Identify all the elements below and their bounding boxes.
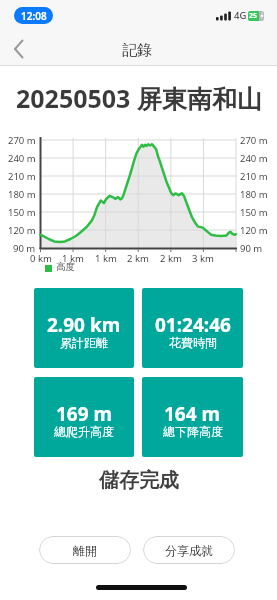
staticText: 120 m [240,224,268,237]
staticText: 90 m [240,242,263,255]
staticText: 240 m [8,152,36,165]
staticText: 270 m [8,134,36,147]
staticText: 總下降高度 [163,424,223,439]
staticText: 120 m [8,224,36,237]
button[interactable]: 01:24:46 [142,288,243,368]
staticText: 分享成就 [165,543,213,558]
staticText: 90 m [13,242,36,255]
staticText: 0 km [30,252,52,265]
staticText: 離開 [73,543,97,558]
staticText: 12:08 [21,9,47,23]
staticText: 210 m [8,170,36,183]
staticText: 累計距離 [60,335,108,350]
button[interactable]: 164 m [142,377,243,457]
staticText: 180 m [8,188,36,201]
staticText: 2 km [127,252,149,265]
staticText: 儲存完成 [99,468,179,493]
staticText: 169 m [56,401,113,427]
staticText: 3 km [192,252,214,265]
staticText: 記錄 [122,41,152,60]
button[interactable]: 169 m [34,377,134,457]
staticText: 150 m [240,206,268,219]
staticText: 高度 [56,261,75,273]
staticText: 164 m [164,401,221,427]
staticText: 花費時間 [169,335,217,350]
staticText: 25 [249,11,258,21]
staticText: 4G [234,9,247,22]
button[interactable]: 2.90 km [34,288,134,368]
button[interactable]: 離開 [39,536,131,564]
staticText: 1 km [62,252,84,265]
staticText: 20250503 屏東南和山 [16,81,262,115]
staticText: 2 km [160,252,182,265]
staticText: 總爬升高度 [54,424,114,439]
staticText: 1 km [95,252,117,265]
staticText: 210 m [240,170,268,183]
staticText: 240 m [240,152,268,165]
staticText: 270 m [240,134,268,147]
staticText: 180 m [240,188,268,201]
button[interactable]: 分享成就 [143,536,235,564]
staticText: 01:24:46 [155,312,231,338]
staticText: 150 m [8,206,36,219]
button[interactable] [6,37,32,61]
staticText: 2.90 km [47,312,121,338]
